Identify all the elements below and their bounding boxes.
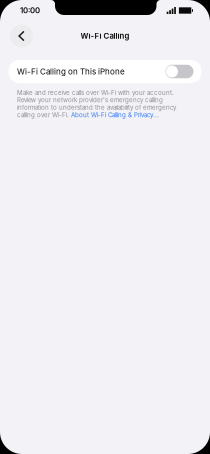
button[interactable]: Wi-Fi Calling on This iPhone xyxy=(8,60,201,83)
button[interactable]: Back xyxy=(10,24,33,47)
staticText: Wi-Fi Calling xyxy=(80,31,129,41)
staticText: Wi-Fi Calling on This iPhone xyxy=(17,67,125,76)
button[interactable]: Make and receive calls over Wi-Fi with y… xyxy=(17,89,177,119)
staticText: Make and receive calls over Wi-Fi with y… xyxy=(17,89,176,119)
staticText: 10:00 xyxy=(20,6,40,15)
